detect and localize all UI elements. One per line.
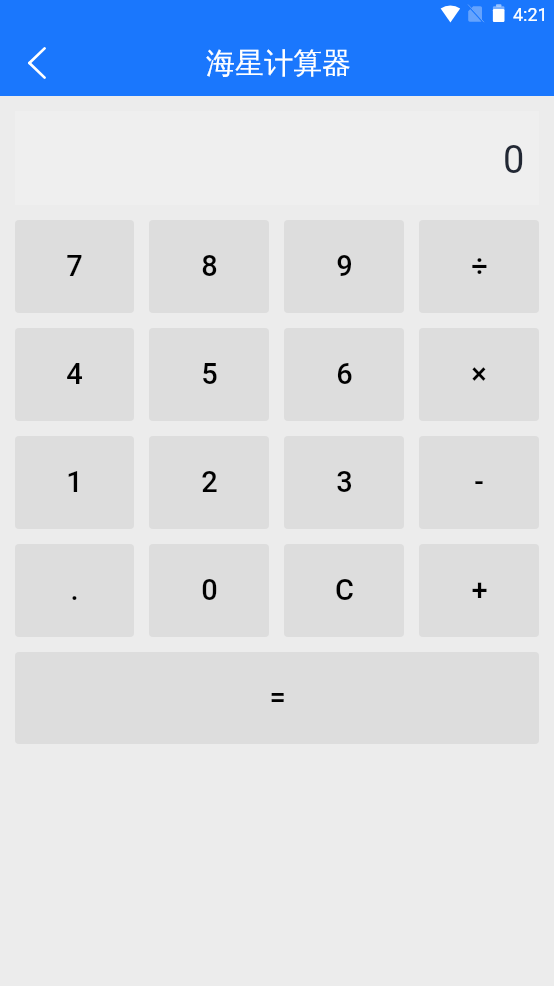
button[interactable]: C — [284, 544, 404, 637]
button[interactable]: 0 — [149, 544, 269, 637]
button[interactable]: + — [419, 544, 539, 637]
button[interactable]: 2 — [149, 436, 269, 529]
staticText: 5 — [201, 357, 218, 391]
button[interactable]: 6 — [284, 328, 404, 421]
button[interactable]: 5 — [149, 328, 269, 421]
button[interactable]: ÷ — [419, 220, 539, 313]
button[interactable]: 4 — [15, 328, 134, 421]
staticText: 2 — [201, 465, 218, 499]
button[interactable]: 7 — [15, 220, 134, 313]
button[interactable]: Back — [0, 30, 74, 96]
staticText: 3 — [336, 465, 353, 499]
button[interactable]: 8 — [149, 220, 269, 313]
button[interactable]: - — [419, 436, 539, 529]
button[interactable]: 3 — [284, 436, 404, 529]
staticText: 6 — [336, 357, 353, 391]
staticText: + — [471, 573, 488, 607]
staticText: 海星计算器 — [206, 45, 351, 82]
staticText: 1 — [66, 465, 83, 499]
button[interactable]: = — [15, 652, 539, 744]
button[interactable]: 1 — [15, 436, 134, 529]
staticText: ÷ — [471, 249, 488, 283]
staticText: - — [474, 465, 484, 499]
staticText: . — [70, 573, 79, 607]
staticText: 0 — [503, 138, 525, 183]
staticText: = — [269, 680, 286, 714]
button[interactable]: × — [419, 328, 539, 421]
staticText: × — [471, 357, 487, 391]
staticText: 7 — [66, 249, 83, 283]
staticText: C — [335, 573, 354, 607]
staticText: 4:21 — [513, 4, 548, 25]
staticText: 0 — [201, 573, 218, 607]
staticText: 4 — [66, 357, 83, 391]
button[interactable]: . — [15, 544, 134, 637]
staticText: 9 — [336, 249, 353, 283]
staticText: 8 — [201, 249, 218, 283]
button[interactable]: 9 — [284, 220, 404, 313]
